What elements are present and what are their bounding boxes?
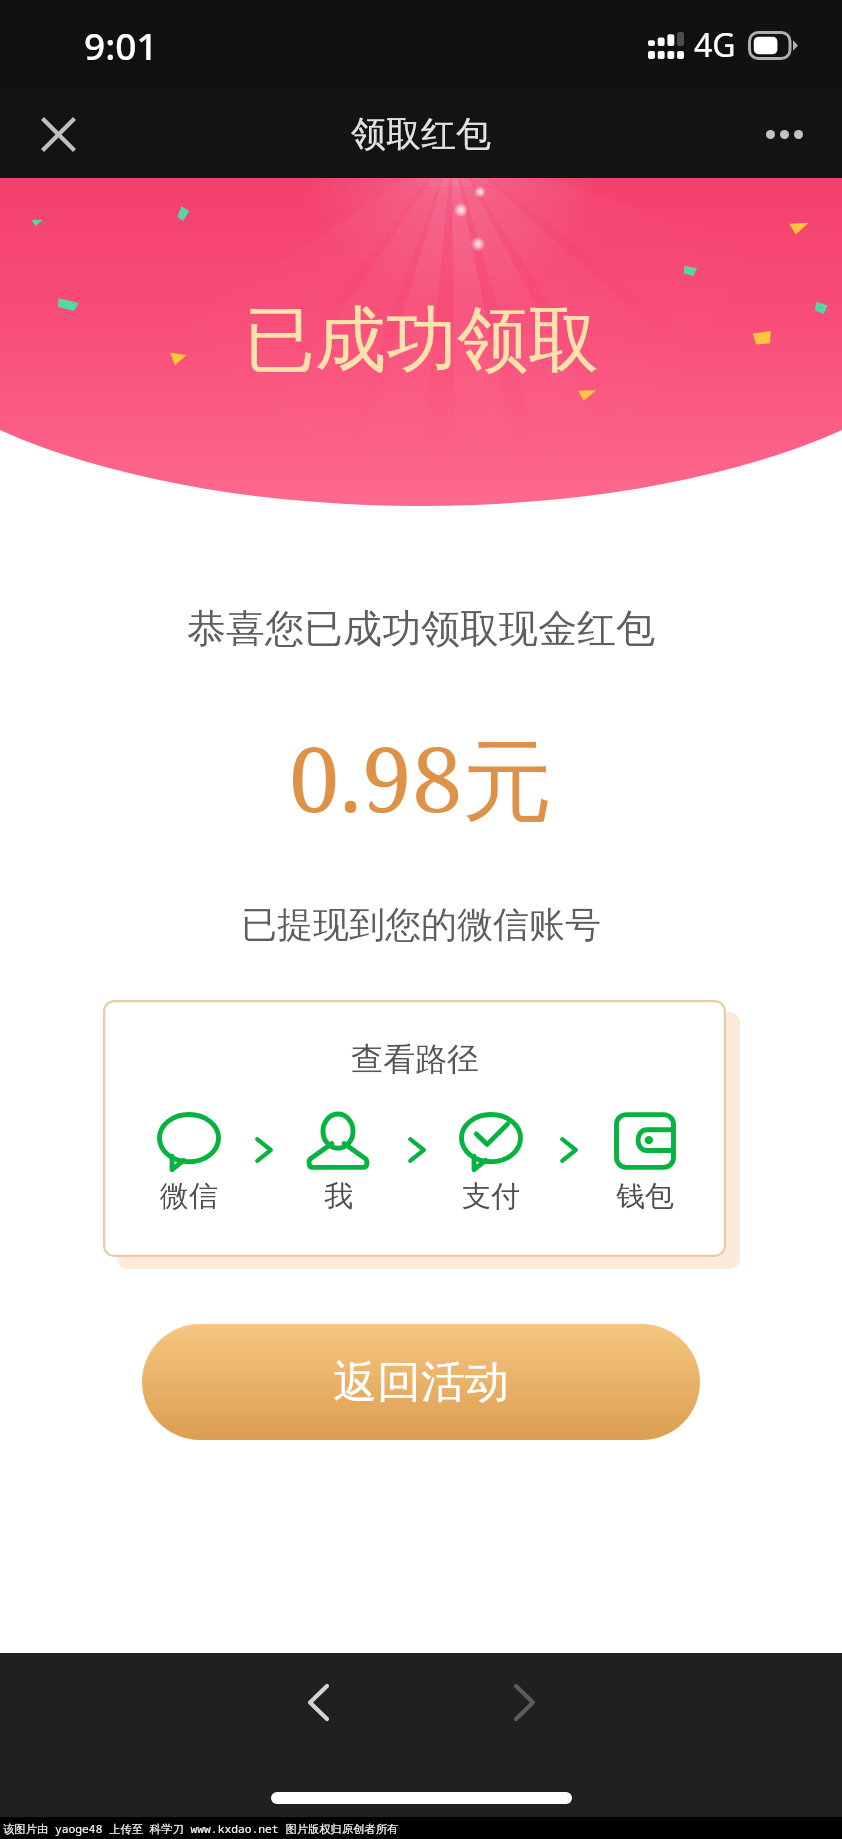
- button[interactable]: 钱包: [600, 1112, 690, 1212]
- staticText: 已提现到您的微信账号: [241, 902, 601, 947]
- button[interactable]: 微信: [144, 1112, 234, 1212]
- button[interactable]: 支付: [446, 1112, 536, 1212]
- staticText: 微信: [160, 1178, 218, 1212]
- staticText: 4G: [694, 23, 736, 67]
- button[interactable]: Forward: [478, 1656, 570, 1748]
- staticText: 0.98元: [289, 716, 553, 839]
- button[interactable]: Back: [272, 1656, 364, 1748]
- staticText: 9:01: [84, 20, 158, 70]
- staticText: 恭喜您已成功领取现金红包: [187, 604, 655, 653]
- button[interactable]: 查看路径: [103, 1000, 726, 1257]
- button[interactable]: 我: [293, 1112, 383, 1212]
- staticText: 该图片由 yaoge48 上传至 科学刀 www.kxdao.net 图片版权归…: [3, 1821, 399, 1836]
- staticText: 返回活动: [333, 1355, 509, 1410]
- staticText: 已成功领取: [244, 296, 599, 385]
- staticText: 钱包: [616, 1178, 674, 1212]
- staticText: 我: [324, 1178, 353, 1212]
- button[interactable]: 返回活动: [142, 1324, 700, 1440]
- staticText: 领取红包: [351, 112, 491, 156]
- staticText: 支付: [462, 1178, 520, 1212]
- button[interactable]: More options: [740, 90, 828, 178]
- button[interactable]: Close: [14, 90, 102, 178]
- staticText: 查看路径: [351, 1039, 479, 1079]
